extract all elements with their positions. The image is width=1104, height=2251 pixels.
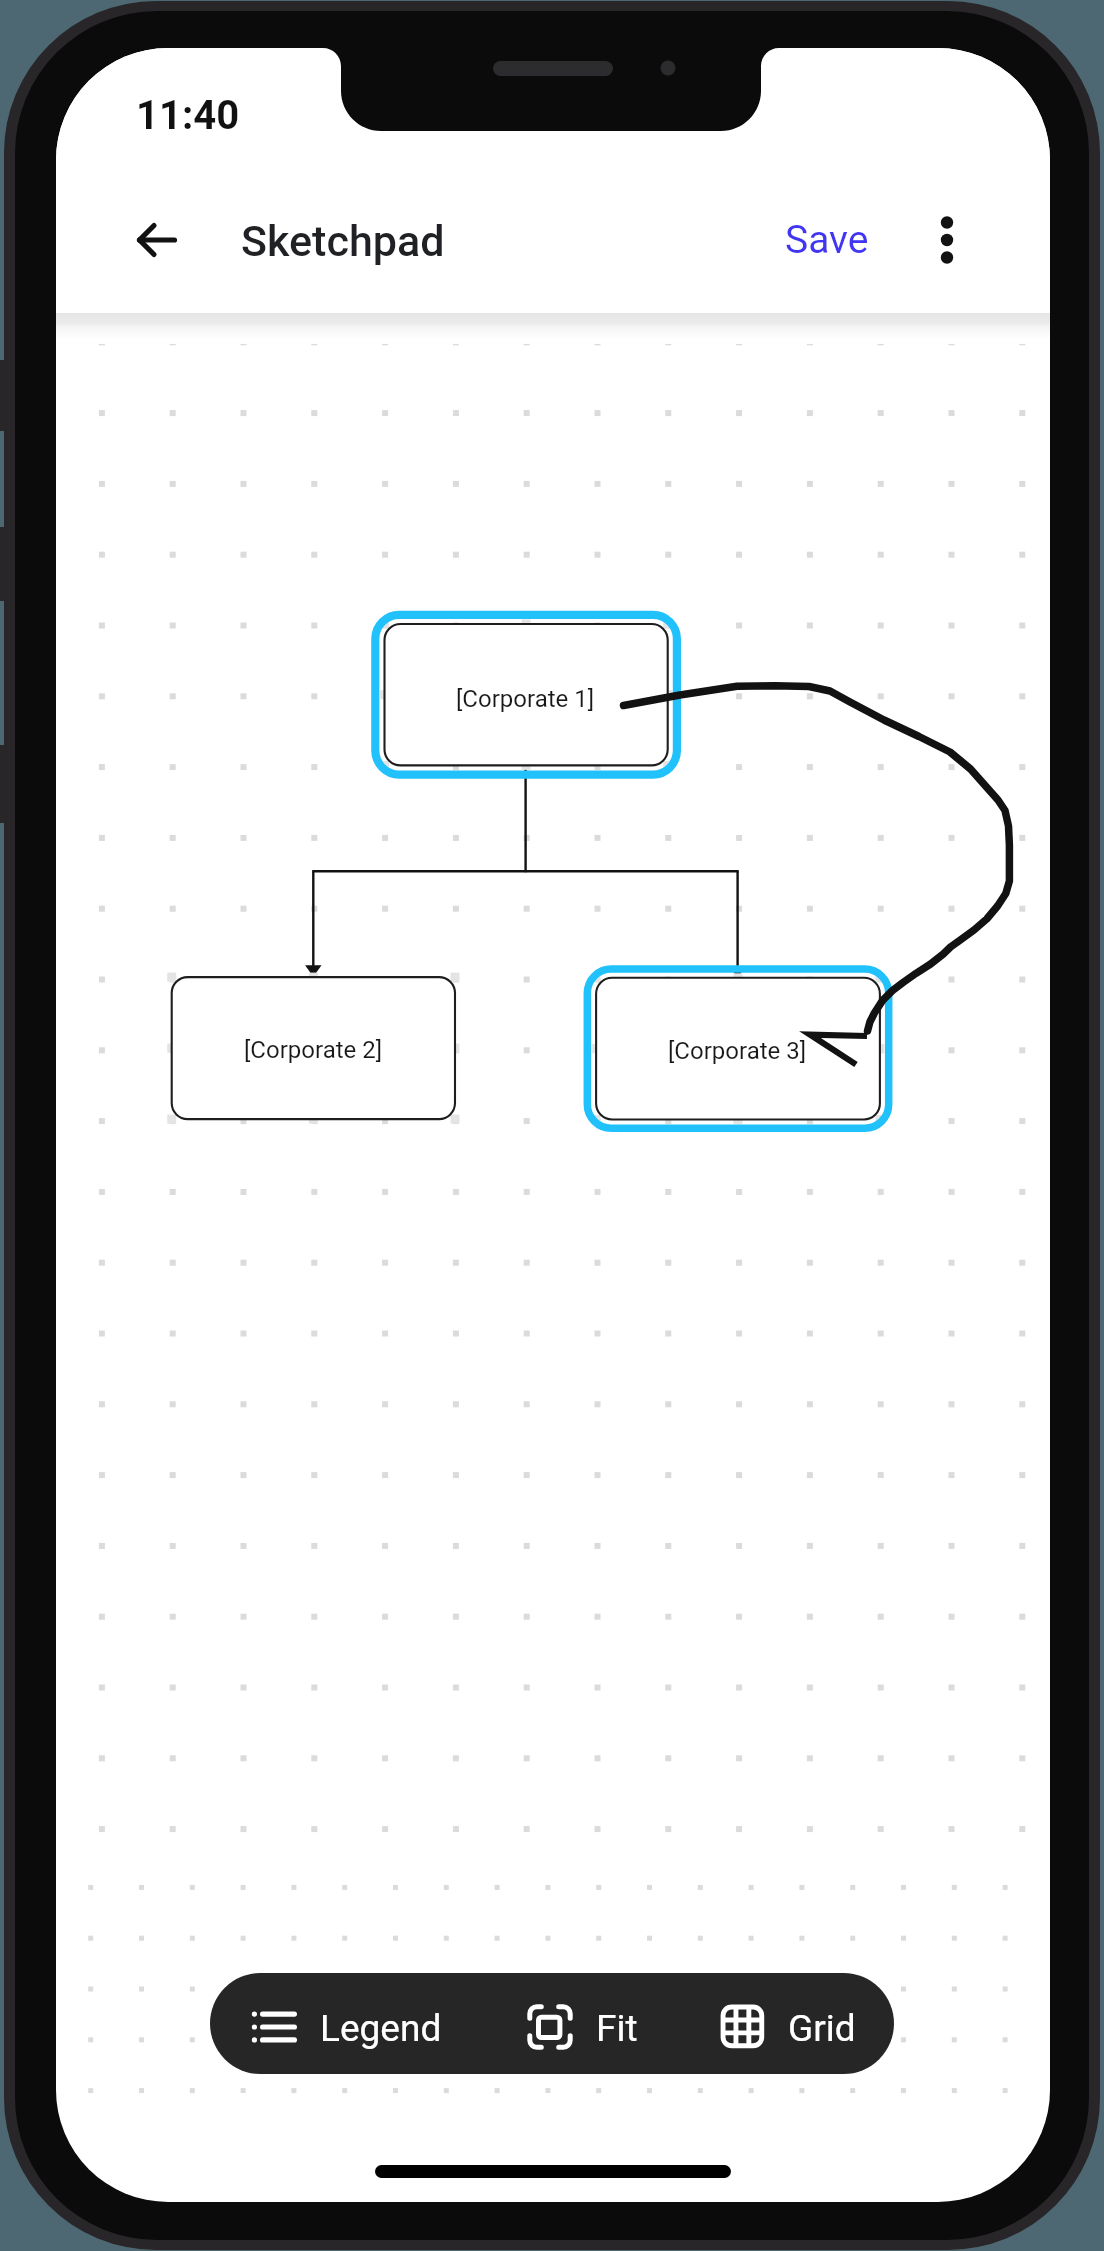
button[interactable]: [Corporate 3] <box>596 978 880 1120</box>
staticText: Legend <box>320 2007 442 2050</box>
button[interactable]: Grid <box>709 1985 869 2063</box>
staticText: Sketchpad <box>241 216 445 266</box>
button[interactable]: Fit <box>516 1985 648 2063</box>
button[interactable]: Legend <box>239 1985 444 2063</box>
staticText: Save <box>785 217 869 263</box>
staticText: Fit <box>596 2007 638 2050</box>
button[interactable]: Save <box>763 206 887 274</box>
staticText: [Corporate 1] <box>456 685 595 713</box>
staticText: Grid <box>788 2007 856 2050</box>
staticText: [Corporate 3] <box>668 1037 807 1065</box>
staticText: [Corporate 2] <box>244 1036 383 1064</box>
button[interactable]: [Corporate 2] <box>172 977 455 1119</box>
staticText: 11:40 <box>136 92 240 139</box>
button[interactable]: [Corporate 1] <box>385 624 668 765</box>
button[interactable]: More options <box>913 206 981 274</box>
button[interactable]: Back <box>123 206 191 274</box>
